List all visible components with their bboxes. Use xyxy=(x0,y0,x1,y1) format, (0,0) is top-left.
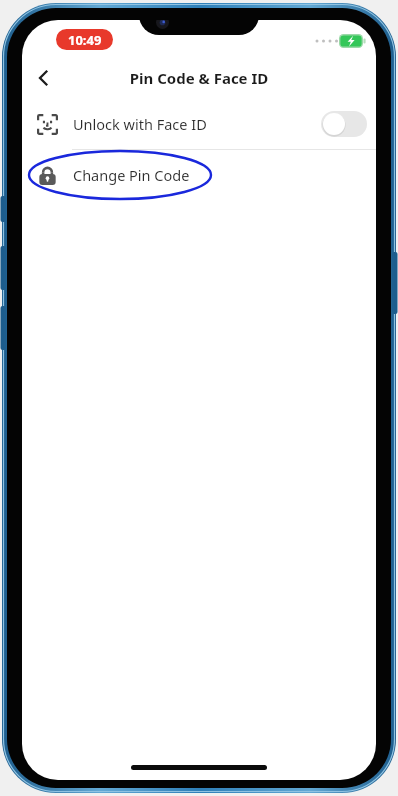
button[interactable]: Unlock with Face ID toggle xyxy=(321,111,367,137)
staticText: Change Pin Code xyxy=(73,165,190,185)
button[interactable]: Change Pin Code xyxy=(22,150,376,200)
button[interactable]: Back xyxy=(22,57,66,99)
button[interactable]: Unlock with Face ID xyxy=(22,99,376,149)
staticText: Pin Code & Face ID xyxy=(22,68,376,88)
staticText: 10:49 xyxy=(68,31,102,49)
staticText: Unlock with Face ID xyxy=(73,114,207,134)
